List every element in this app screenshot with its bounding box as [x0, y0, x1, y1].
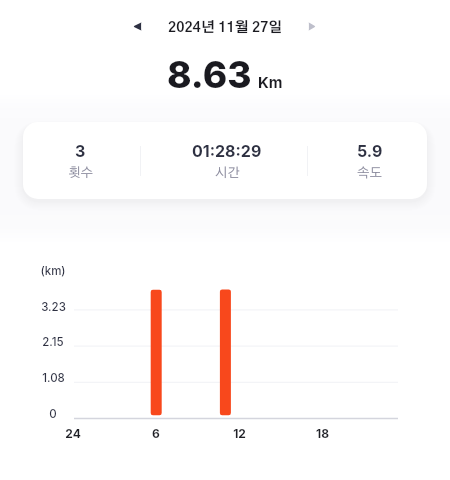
button[interactable]: 01:28:29 [141, 122, 307, 199]
staticText: (km) [40, 264, 66, 278]
staticText: 12 [233, 426, 246, 441]
button[interactable]: Next day [299, 13, 325, 39]
staticText: 24 [65, 426, 81, 441]
staticText: 5.9 [357, 141, 383, 160]
staticText: 6 [152, 426, 160, 441]
button[interactable]: Previous day [124, 13, 150, 39]
staticText: 1.08 [42, 371, 65, 385]
button[interactable]: 3 [23, 122, 140, 199]
staticText: 2024년 11월 27일 [168, 21, 283, 35]
staticText: 01:28:29 [192, 141, 262, 160]
staticText: 횟수 [68, 167, 93, 180]
button[interactable]: 5.9 [308, 122, 427, 199]
staticText: 0 [49, 407, 57, 421]
staticText: 2.15 [42, 335, 64, 349]
staticText: 3.23 [41, 300, 66, 314]
staticText: 8.63 [167, 52, 252, 97]
staticText: 속도 [357, 167, 382, 180]
staticText: 3 [75, 141, 86, 160]
staticText: 시간 [215, 167, 240, 180]
staticText: Km [258, 73, 283, 91]
staticText: 18 [316, 426, 329, 441]
